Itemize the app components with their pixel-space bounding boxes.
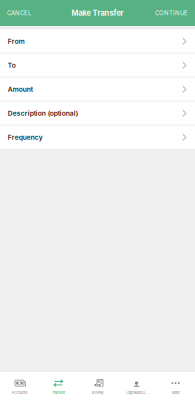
button[interactable]: Description (optional) <box>0 101 195 125</box>
button[interactable]: More <box>156 372 195 400</box>
button[interactable]: Transfer <box>39 372 78 400</box>
staticText: Amount <box>8 85 33 93</box>
staticText: Login&Secu... <box>125 390 147 395</box>
staticText: Frequency <box>8 133 43 141</box>
button[interactable]: Login&Secu... <box>117 372 156 400</box>
staticText: Make Transfer <box>71 8 123 17</box>
button[interactable]: CONTINUE <box>150 0 195 26</box>
staticText: CONTINUE <box>155 9 188 17</box>
staticText: More <box>171 390 179 395</box>
button[interactable]: From <box>0 29 195 53</box>
staticText: Transfer <box>52 390 65 395</box>
staticText: CANCEL <box>7 9 31 17</box>
button[interactable]: Frequency <box>0 125 195 149</box>
staticText: Accounts <box>11 390 27 395</box>
button[interactable]: Accounts <box>0 372 39 400</box>
staticText: From <box>8 37 25 45</box>
staticText: Description (optional) <box>8 109 78 117</box>
staticText: To <box>8 61 16 69</box>
button[interactable]: CANCEL <box>0 0 36 26</box>
button[interactable]: Amount <box>0 77 195 101</box>
button[interactable]: BillPay <box>78 372 117 400</box>
button[interactable]: To <box>0 53 195 77</box>
staticText: BillPay <box>91 390 103 395</box>
